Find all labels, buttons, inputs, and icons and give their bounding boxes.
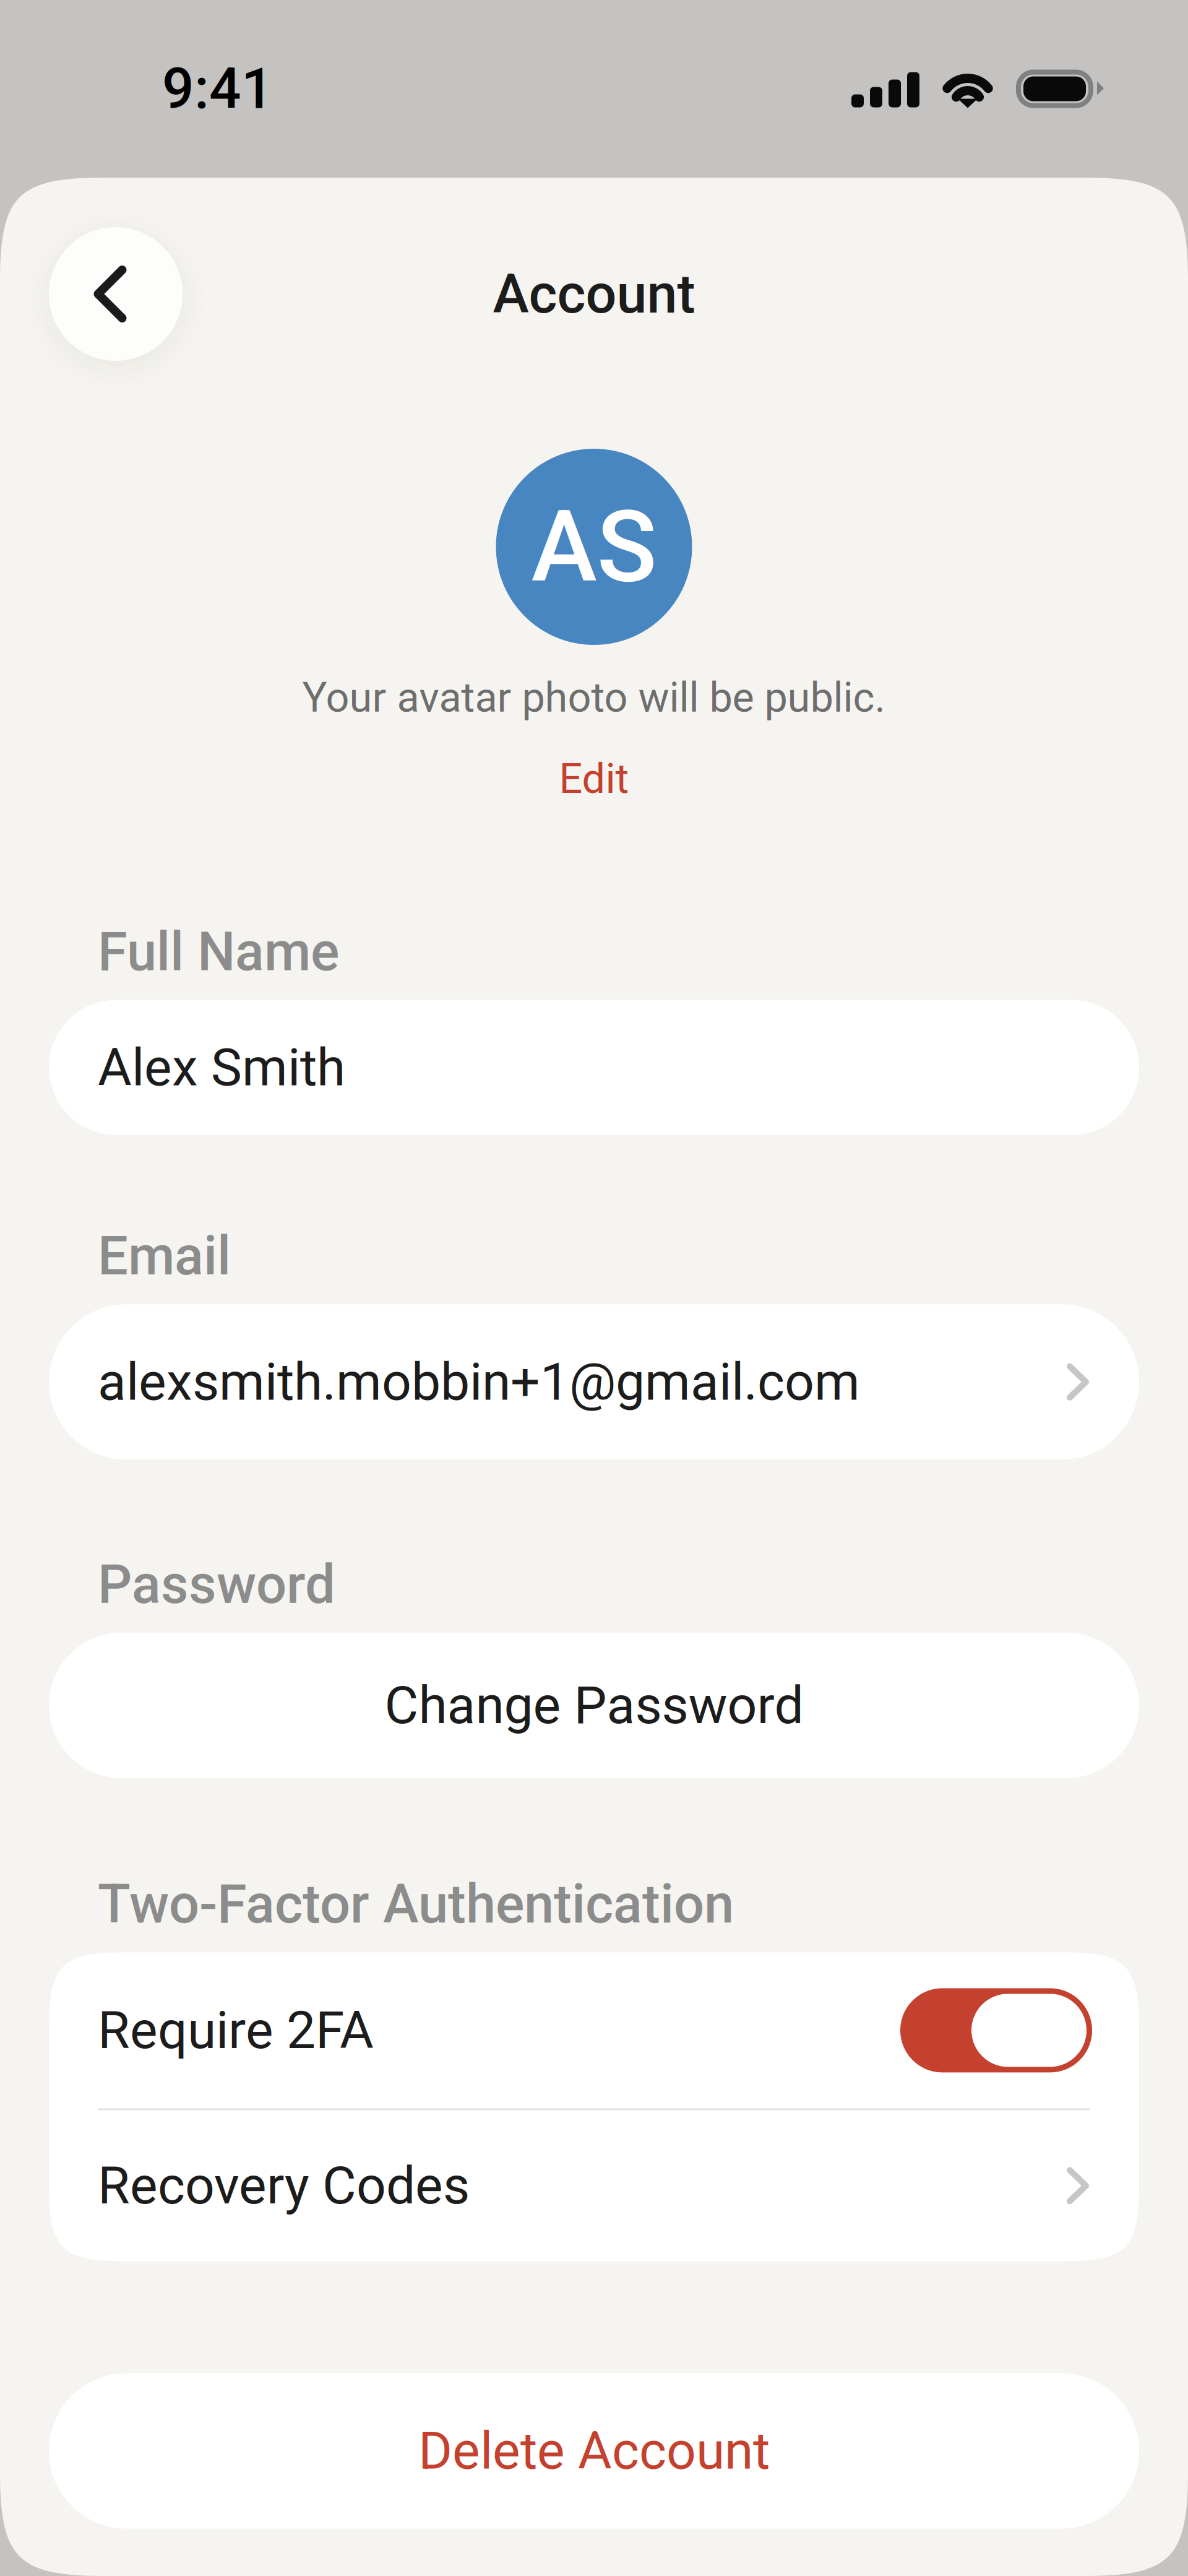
staticText: Your avatar photo will be public. (302, 673, 886, 722)
button[interactable]: Change avatar (496, 449, 692, 645)
staticText: AS (531, 489, 657, 605)
button[interactable]: alexsmith.mobbin+1@gmail.com (49, 1304, 1139, 1460)
button[interactable]: Require 2FA (49, 1952, 1139, 2108)
staticText: 9:41 (162, 56, 273, 122)
staticText: Delete Account (418, 2420, 770, 2481)
staticText: Recovery Codes (98, 2155, 470, 2216)
button[interactable]: Recovery Codes (49, 2110, 1139, 2261)
staticText: Require 2FA (98, 2000, 374, 2061)
button[interactable]: Back (49, 227, 183, 361)
button[interactable]: Change Password (49, 1633, 1139, 1778)
button[interactable]: Edit (514, 749, 674, 808)
staticText: Edit (559, 755, 629, 803)
staticText: alexsmith.mobbin+1@gmail.com (98, 1351, 860, 1412)
staticText: Password (98, 1553, 335, 1616)
staticText: Change Password (385, 1675, 803, 1736)
staticText: Email (98, 1225, 231, 1288)
staticText: Account (493, 262, 695, 326)
button[interactable]: Delete Account (49, 2373, 1139, 2529)
staticText: Full Name (98, 920, 339, 983)
staticText: Alex Smith (98, 1037, 345, 1098)
staticText: Two-Factor Authentication (98, 1873, 734, 1936)
